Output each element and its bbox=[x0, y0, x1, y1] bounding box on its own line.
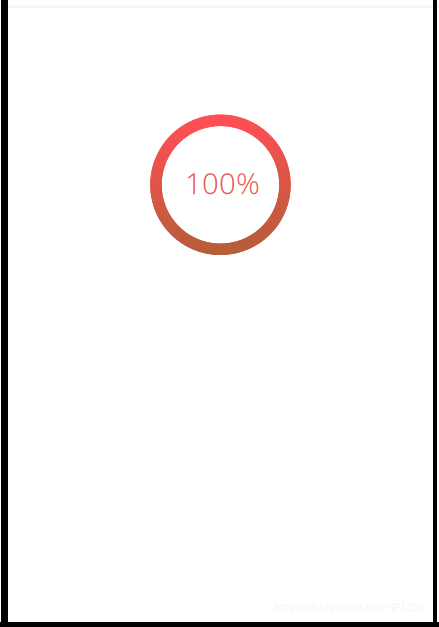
staticText: https://blog.csdn.net/HF1203 bbox=[274, 600, 424, 614]
staticText: 100% bbox=[185, 163, 260, 202]
button[interactable]: Progress 100 percent bbox=[150, 115, 291, 255]
